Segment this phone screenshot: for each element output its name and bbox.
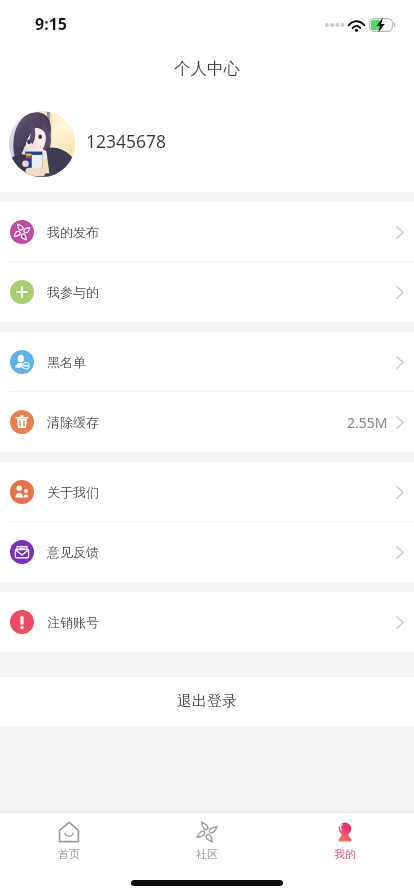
staticText: 我参与的 [47, 284, 99, 300]
staticText: 社区 [196, 847, 218, 861]
staticText: 12345678 [86, 129, 167, 153]
staticText: 我的 [334, 847, 356, 861]
staticText: 黑名单 [47, 354, 86, 370]
button[interactable]: 清除缓存 [0, 392, 414, 452]
button[interactable]: 注销账号 [0, 592, 414, 652]
staticText: 注销账号 [47, 614, 99, 630]
button[interactable]: 社区 [138, 813, 276, 862]
button[interactable]: 黑名单 [0, 332, 414, 392]
button[interactable]: 关于我们 [0, 462, 414, 522]
staticText: 意见反馈 [47, 544, 99, 560]
button[interactable]: 我的发布 [0, 202, 414, 262]
staticText: 2.55M [347, 413, 388, 432]
staticText: 清除缓存 [47, 414, 99, 430]
button[interactable]: 首页 [0, 813, 138, 862]
staticText: 关于我们 [47, 484, 99, 500]
button[interactable]: 我参与的 [0, 262, 414, 322]
staticText: 9:15 [35, 13, 67, 35]
staticText: 首页 [58, 847, 80, 861]
button[interactable]: 退出登录 [0, 677, 414, 726]
staticText: 我的发布 [47, 224, 99, 240]
button[interactable]: 意见反馈 [0, 522, 414, 582]
staticText: 退出登录 [177, 692, 237, 711]
button[interactable]: 12345678 [0, 92, 414, 192]
button[interactable]: 我的 [276, 813, 414, 862]
staticText: 个人中心 [174, 58, 240, 79]
